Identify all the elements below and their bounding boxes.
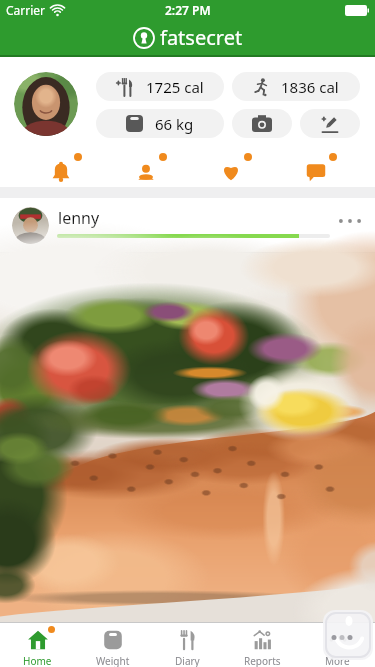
staticText: 66 kg	[155, 114, 194, 134]
button[interactable]: Reports	[225, 623, 300, 667]
button[interactable]	[14, 72, 78, 136]
staticText: Reports	[244, 654, 281, 667]
staticText: Weight	[96, 654, 130, 667]
staticText: Home	[23, 654, 52, 667]
staticText: 1725 cal	[146, 77, 204, 97]
staticText: fatsecret	[160, 24, 243, 51]
staticText: More	[325, 654, 350, 667]
button[interactable]	[216, 153, 256, 183]
staticText: 1836 cal	[281, 77, 339, 97]
button[interactable]	[301, 153, 341, 183]
button[interactable]: Home	[0, 623, 75, 667]
button[interactable]	[300, 109, 360, 138]
button[interactable]	[46, 153, 86, 183]
button[interactable]: lenny	[0, 198, 375, 252]
staticText: 2:27 PM	[165, 2, 211, 18]
button[interactable]	[0, 253, 375, 622]
staticText: lenny	[58, 207, 100, 229]
button[interactable]	[131, 153, 171, 183]
button[interactable]: 1725 cal	[96, 72, 224, 101]
button[interactable]	[232, 109, 292, 138]
staticText: Carrier	[6, 2, 46, 18]
staticText: Diary	[175, 654, 200, 667]
button[interactable]: More	[300, 623, 375, 667]
button[interactable]: 66 kg	[96, 109, 224, 138]
button[interactable]: 1836 cal	[232, 72, 360, 101]
button[interactable]: Weight	[75, 623, 150, 667]
button[interactable]: Diary	[150, 623, 225, 667]
